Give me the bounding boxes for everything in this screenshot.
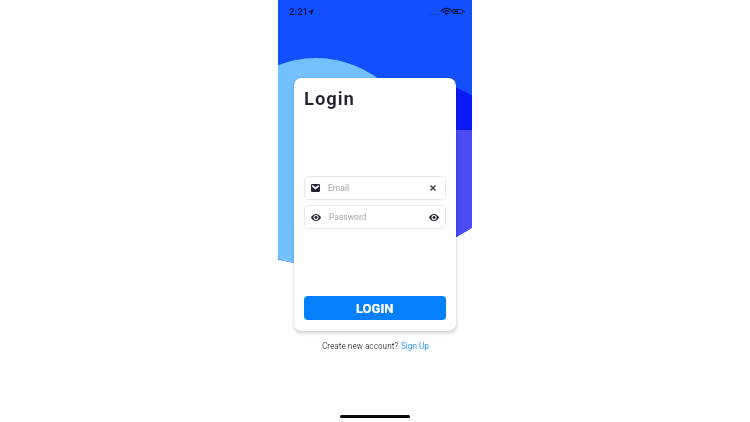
button[interactable]: Show password (304, 205, 446, 229)
staticText: Create new account? (322, 341, 401, 351)
button[interactable]: Clear text (430, 185, 439, 191)
button[interactable]: Sign Up (401, 341, 429, 351)
button[interactable]: Show password (429, 214, 439, 221)
staticText: Password (329, 212, 367, 222)
staticText: Email (328, 183, 350, 193)
staticText: 2:21 (289, 6, 309, 17)
staticText: Login (304, 88, 355, 110)
button[interactable]: LOGIN (304, 296, 446, 320)
other: Show password (311, 214, 321, 221)
button[interactable]: Email (304, 176, 446, 200)
staticText: LOGIN (356, 301, 394, 316)
